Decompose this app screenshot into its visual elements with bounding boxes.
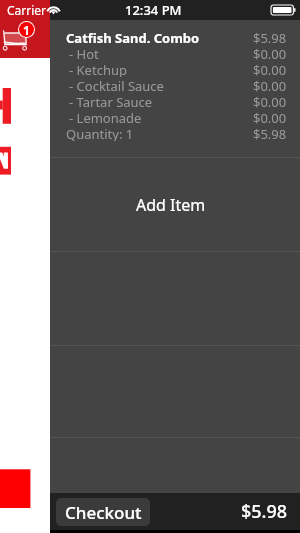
staticText: - Lemonade [69,109,142,125]
staticText: $5.98 [253,125,287,141]
staticText: - Ketchup [69,61,127,77]
staticText: $5.98 [253,29,287,45]
staticText: - Hot [69,45,99,61]
staticText: Carrier [7,2,47,18]
button[interactable]: Checkout [56,498,150,526]
staticText: $0.00 [253,109,287,125]
button[interactable]: Cart [0,20,36,54]
button[interactable]: Add Item [50,158,300,251]
staticText: 12:34 PM [125,1,182,19]
staticText: $0.00 [253,45,287,61]
staticText: Quantity: 1 [66,125,134,141]
staticText: $0.00 [253,61,287,77]
staticText: 1 [23,22,30,37]
staticText: $0.00 [253,93,287,109]
staticText: Checkout [65,501,142,524]
staticText: Add Item [136,194,206,216]
staticText: $0.00 [253,77,287,93]
staticText: $5.98 [241,499,288,524]
staticText: - Tartar Sauce [69,93,153,109]
staticText: Catfish Sand. Combo [66,29,200,45]
staticText: - Cocktail Sauce [69,77,164,93]
